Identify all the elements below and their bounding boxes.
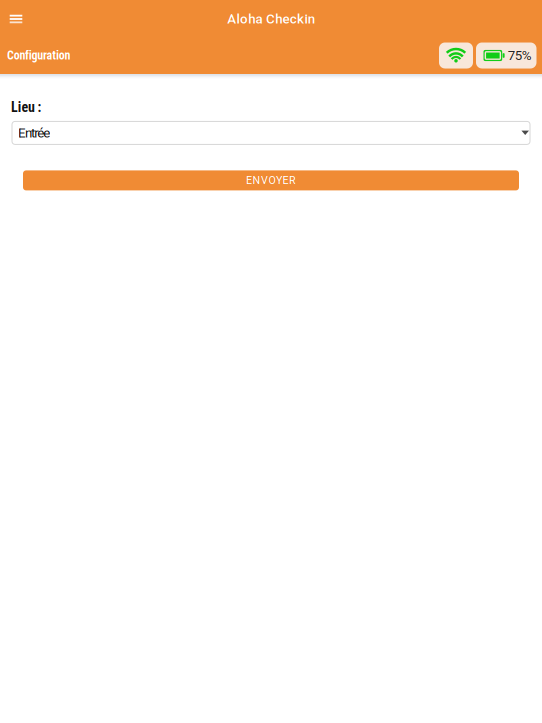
button[interactable]: Wi-Fi connected	[439, 42, 473, 68]
staticText: Entrée	[18, 125, 50, 141]
button[interactable]: Battery 75 percent	[476, 42, 536, 68]
button[interactable]: ENVOYER	[23, 170, 519, 190]
button[interactable]: Menu	[0, 0, 32, 37]
staticText: Configuration	[7, 48, 70, 63]
staticText: ENVOYER	[246, 174, 296, 187]
staticText: Lieu :	[11, 99, 41, 115]
staticText: 75%	[508, 48, 532, 63]
staticText: Aloha Checkin	[227, 11, 315, 27]
button[interactable]: Entrée	[12, 121, 530, 144]
